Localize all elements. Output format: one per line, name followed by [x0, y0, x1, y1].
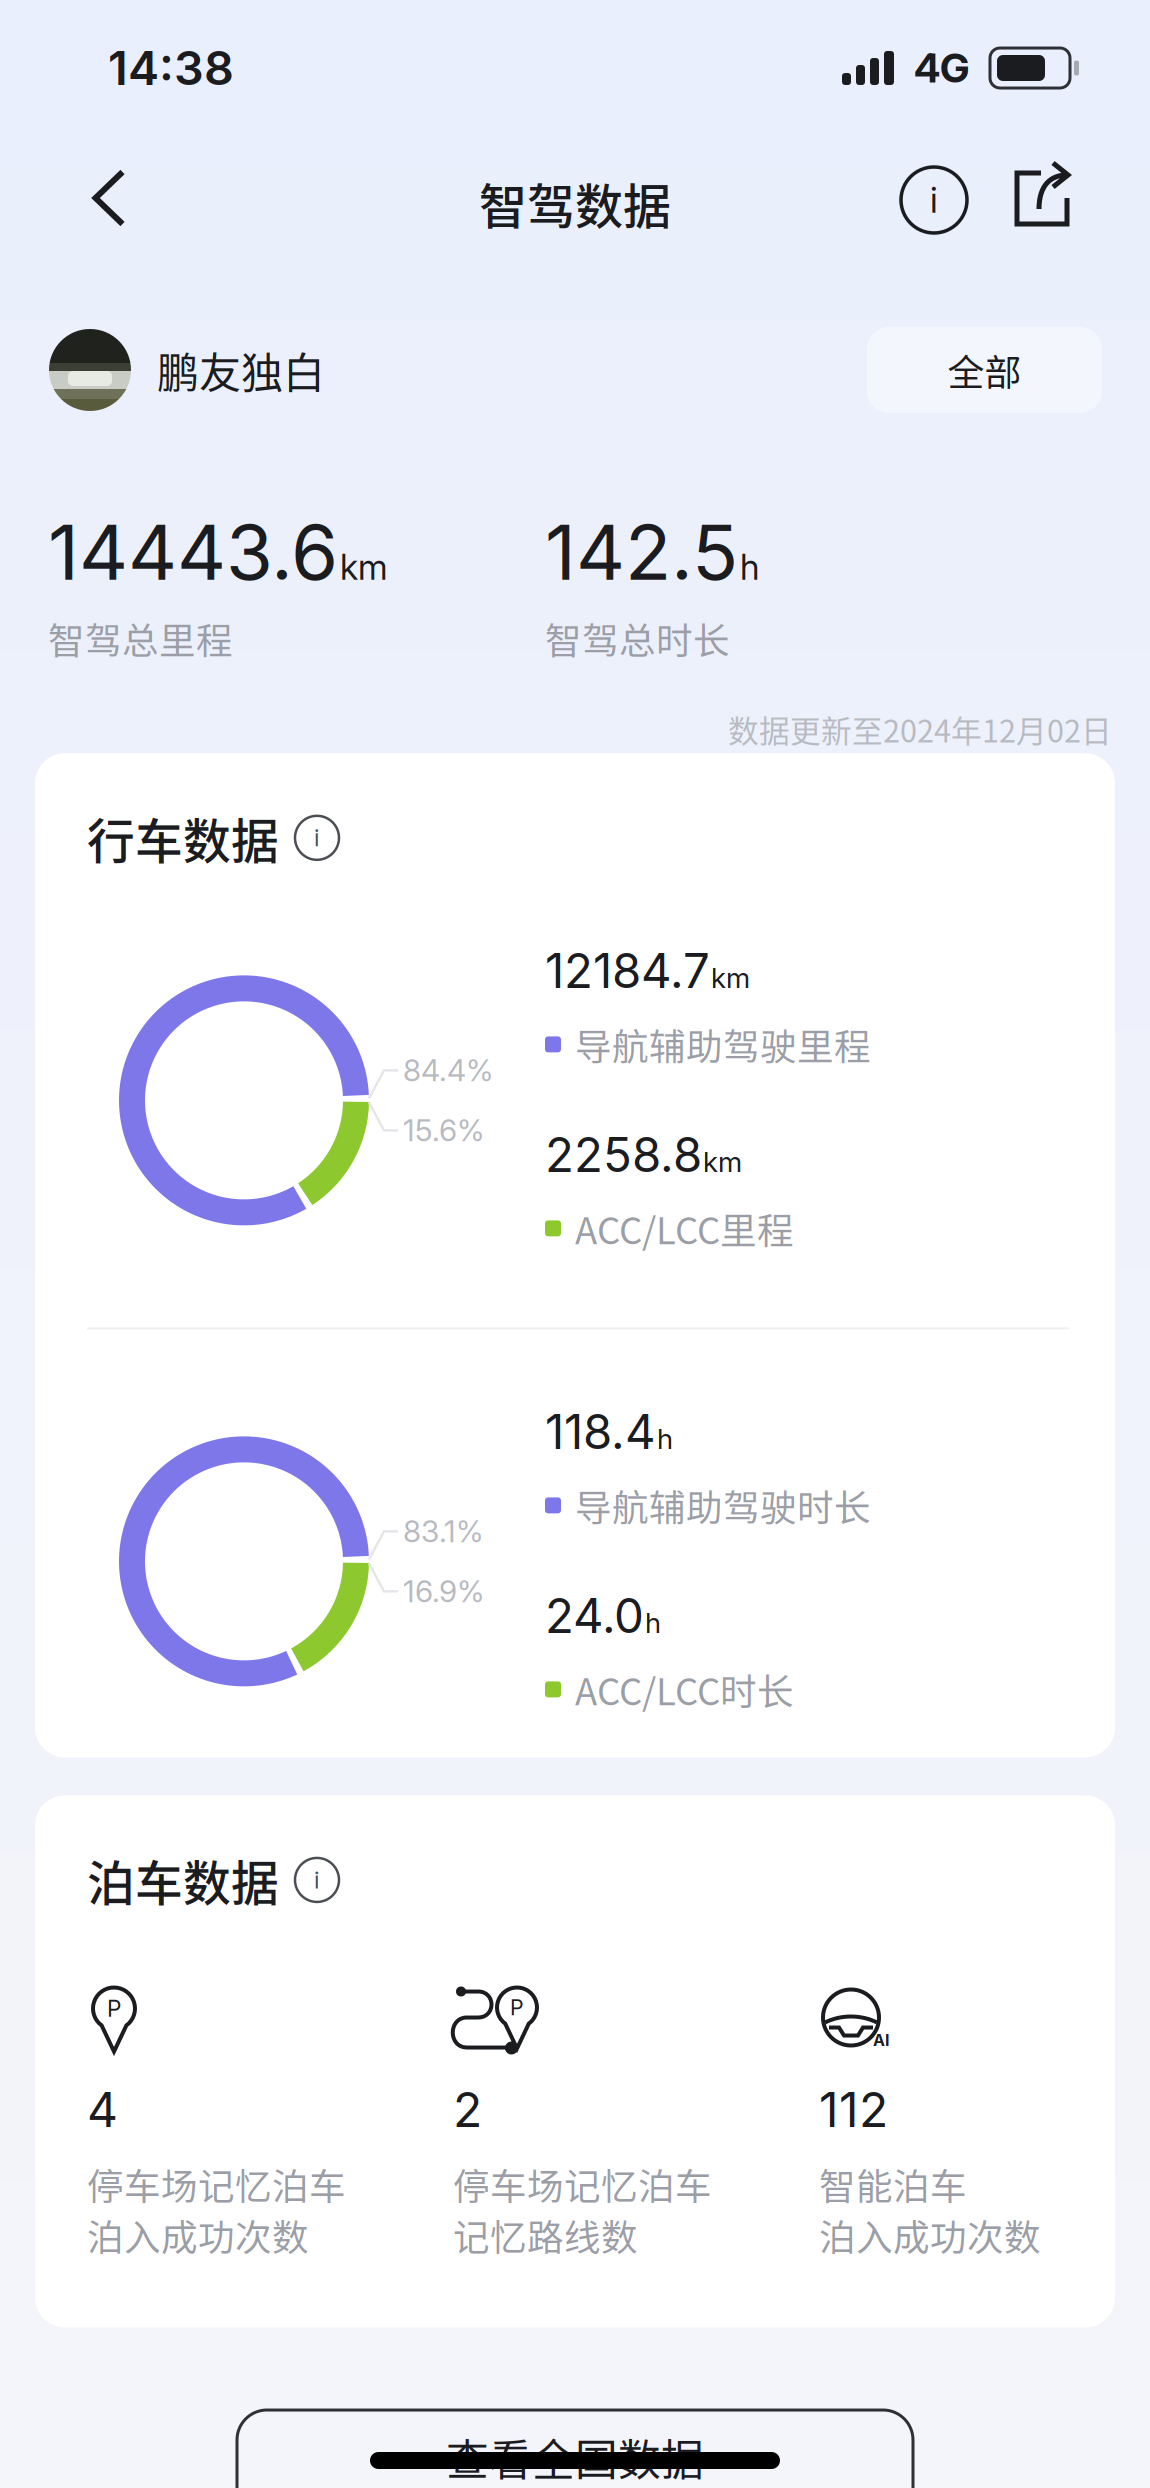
staticText: 14:38	[108, 40, 234, 96]
staticText: 24.0	[545, 1587, 644, 1644]
staticText: 智驾数据	[479, 168, 671, 238]
staticText: 142.5	[545, 506, 738, 598]
button[interactable]: 全部	[867, 327, 1102, 413]
staticText: 数据更新至2024年12月02日	[728, 707, 1112, 751]
staticText: 4G	[914, 44, 969, 92]
button[interactable]: 查看全国数据	[237, 2410, 913, 2488]
staticText: 智能泊车	[819, 2158, 967, 2210]
staticText: 记忆路线数	[453, 2209, 638, 2261]
staticText: 泊入成功次数	[819, 2209, 1041, 2261]
staticText: 查看全国数据	[446, 2426, 704, 2488]
staticText: 鹏友独白	[157, 340, 325, 400]
staticText: 智驾总里程	[48, 612, 233, 665]
staticText: h	[645, 1606, 661, 1640]
staticText: 84.4%	[403, 1052, 493, 1088]
staticText: 118.4	[545, 1403, 656, 1460]
staticText: km	[703, 1145, 742, 1179]
staticText: 行车数据	[87, 803, 279, 872]
staticText: h	[657, 1422, 673, 1456]
staticText: ACC/LCC时长	[575, 1663, 794, 1716]
staticText: i	[314, 1866, 320, 1894]
staticText: 12184.7	[545, 942, 710, 999]
staticText: ACC/LCC里程	[575, 1202, 794, 1255]
staticText: 15.6%	[403, 1112, 484, 1148]
button[interactable]: Info	[871, 167, 997, 287]
staticText: h	[740, 546, 759, 588]
staticText: P	[107, 1995, 121, 2022]
staticText: i	[314, 824, 320, 852]
staticText: km	[711, 961, 750, 995]
staticText: 4	[87, 2080, 118, 2138]
staticText: 智驾总时长	[545, 612, 730, 665]
staticText: AI	[873, 2030, 889, 2050]
staticText: 泊车数据	[87, 1845, 279, 1914]
staticText: 112	[819, 2080, 888, 2138]
staticText: P	[510, 1995, 524, 2020]
staticText: 全部	[947, 343, 1021, 397]
staticText: 14443.6	[48, 506, 338, 598]
staticText: 导航辅助驾驶时长	[575, 1479, 871, 1532]
staticText: 停车场记忆泊车	[87, 2158, 346, 2210]
button[interactable]: Back	[64, 167, 154, 287]
staticText: 16.9%	[403, 1573, 484, 1609]
staticText: 停车场记忆泊车	[453, 2158, 712, 2210]
staticText: 83.1%	[403, 1513, 483, 1549]
staticText: km	[340, 546, 388, 588]
button[interactable]: Share	[997, 167, 1087, 287]
staticText: 2258.8	[545, 1126, 702, 1183]
staticText: i	[930, 179, 938, 221]
staticText: 泊入成功次数	[87, 2209, 309, 2261]
staticText: 导航辅助驾驶里程	[575, 1018, 871, 1071]
staticText: 2	[453, 2080, 482, 2138]
